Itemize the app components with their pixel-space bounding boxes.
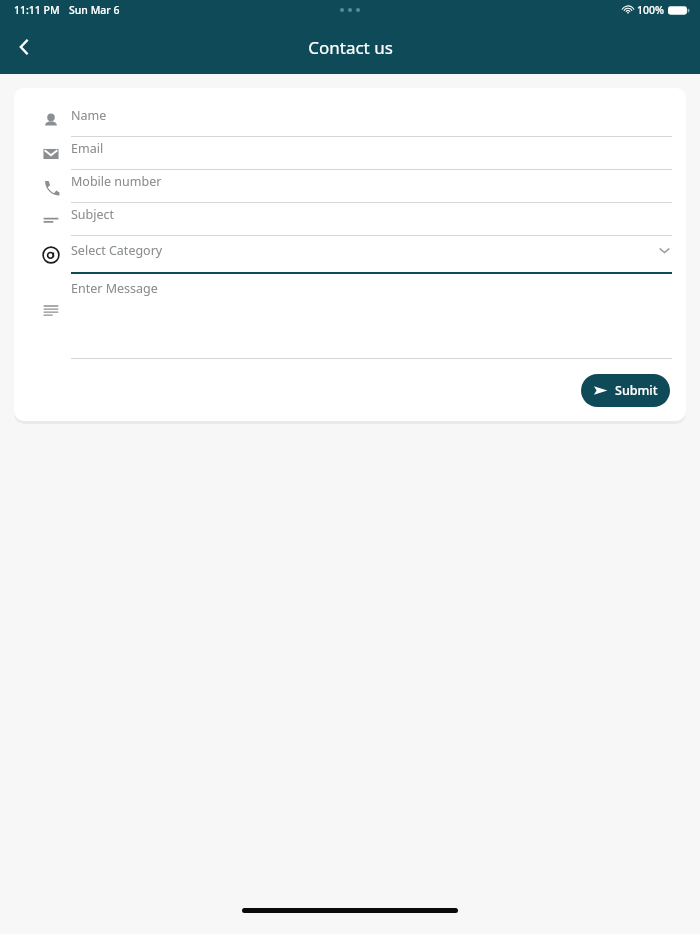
staticText: 11:11 PM (14, 3, 60, 17)
button[interactable]: Submit (581, 374, 670, 407)
staticText: 100% (637, 3, 664, 17)
staticText: Email (71, 140, 104, 157)
button[interactable]: Email (14, 137, 686, 170)
staticText: Mobile number (71, 173, 162, 190)
staticText: Submit (615, 382, 658, 399)
button[interactable]: Mobile number (14, 170, 686, 203)
staticText: Name (71, 107, 107, 124)
staticText: Select Category (71, 242, 163, 259)
staticText: Enter Message (71, 280, 158, 297)
button[interactable]: Name (14, 104, 686, 137)
button[interactable]: Back (2, 25, 46, 69)
button[interactable]: Enter Message (14, 274, 686, 359)
staticText: Sun Mar 6 (69, 3, 120, 17)
staticText: Subject (71, 206, 115, 223)
button[interactable]: Select Category (14, 236, 686, 274)
staticText: Contact us (308, 36, 393, 59)
button[interactable]: Subject (14, 203, 686, 236)
